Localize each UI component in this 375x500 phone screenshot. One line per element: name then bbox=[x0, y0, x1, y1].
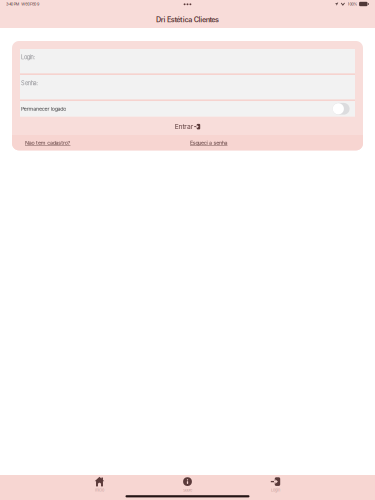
staticText: Sobre bbox=[183, 488, 192, 492]
staticText: 3:40 PM bbox=[6, 2, 19, 6]
staticText: Esqueci a senha bbox=[190, 139, 227, 146]
button[interactable]: Início bbox=[71, 475, 127, 500]
staticText: Permanecer logado bbox=[21, 106, 66, 112]
staticText: Login: bbox=[21, 54, 35, 61]
button[interactable]: Senha: bbox=[20, 75, 355, 99]
staticText: Wed Feb 9 bbox=[21, 2, 39, 6]
button[interactable]: Não tem cadastro? bbox=[12, 135, 187, 150]
button[interactable]: Entrar bbox=[20, 116, 355, 135]
button[interactable]: Sobre bbox=[159, 475, 215, 500]
staticText: Entrar bbox=[175, 123, 194, 131]
staticText: Dri Estética Clientes bbox=[156, 15, 219, 24]
button[interactable]: Esqueci a senha bbox=[187, 135, 363, 150]
staticText: Login bbox=[271, 488, 280, 492]
button[interactable]: Multitasking options bbox=[175, 3, 199, 5]
staticText: 100% bbox=[347, 2, 357, 6]
staticText: Não tem cadastro? bbox=[25, 139, 70, 146]
button[interactable]: Login bbox=[247, 475, 303, 500]
staticText: Senha: bbox=[21, 80, 38, 87]
staticText: Início bbox=[95, 488, 104, 492]
button[interactable]: Permanecer logado bbox=[333, 103, 350, 115]
button[interactable]: Login: bbox=[20, 49, 355, 73]
